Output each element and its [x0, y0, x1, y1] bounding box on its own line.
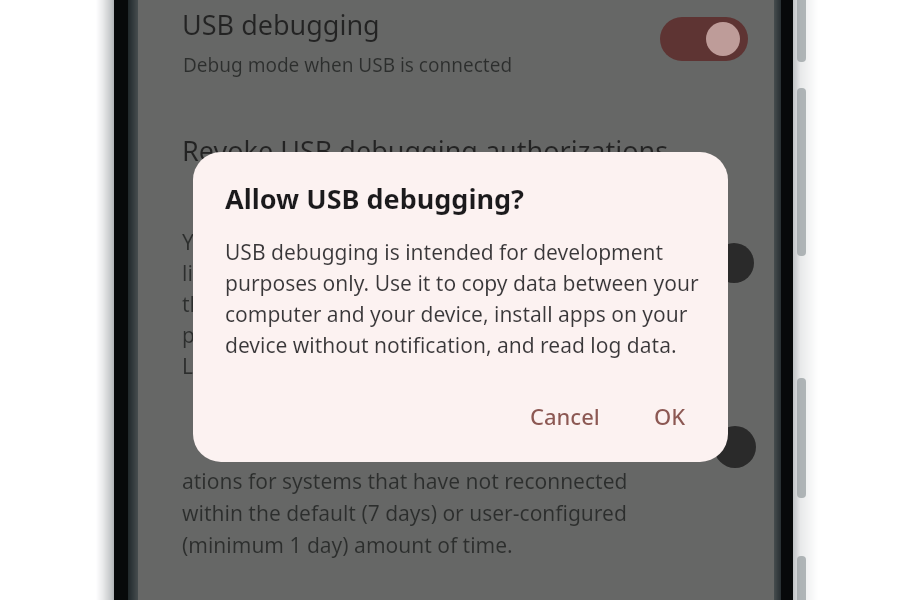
button[interactable]: OK — [638, 392, 702, 440]
button[interactable]: Cancel — [514, 392, 616, 440]
staticText: USB debugging — [182, 6, 380, 43]
staticText: listed so you can authorize access to — [182, 259, 541, 290]
staticText: Cancel — [530, 401, 600, 431]
staticText: Allow USB debugging? — [225, 180, 524, 217]
staticText: Revoke USB debugging authorizations — [182, 132, 669, 169]
staticText: ations for systems that have not reconne… — [182, 467, 628, 499]
button[interactable]: USB debugging — [138, 0, 774, 96]
staticText: Debug mode when USB is connected — [183, 52, 513, 78]
staticText: OK — [654, 401, 686, 431]
staticText: Logs may be deleted for authoriz- — [182, 352, 515, 383]
staticText: this device. Revoking removes all — [182, 290, 506, 321]
staticText: (minimum 1 day) amount of time. — [182, 531, 513, 563]
staticText: USB debugging is intended for developmen… — [225, 238, 704, 359]
button[interactable]: USB debugging toggle — [660, 17, 748, 61]
staticText: previously granted authorizations. — [182, 321, 520, 352]
staticText: Your computer's RSA key fingerprint is — [182, 228, 560, 259]
staticText: within the default (7 days) or user-conf… — [182, 499, 627, 531]
